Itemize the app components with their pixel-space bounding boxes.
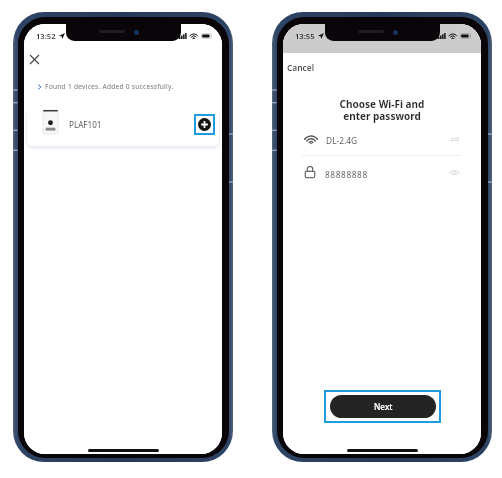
button[interactable]: DL-2.4G: [300, 127, 463, 151]
staticText: Found 1 devices. Added 0 successfully.: [45, 82, 174, 91]
staticText: Choose Wi-Fi and enter password: [283, 97, 481, 123]
staticText: 13:52: [36, 31, 56, 41]
staticText: PLAF101: [69, 119, 102, 130]
staticText: 88888888: [325, 169, 368, 180]
button[interactable]: Add device: [196, 116, 213, 133]
other: Switch network: [450, 136, 460, 143]
staticText: Next: [374, 401, 393, 412]
other: Show password: [449, 169, 460, 176]
staticText: 13:55: [295, 31, 315, 41]
button[interactable]: Next: [330, 395, 436, 418]
button[interactable]: PLAF101: [27, 108, 219, 146]
button[interactable]: Close: [25, 50, 44, 69]
button[interactable]: Cancel: [287, 62, 315, 73]
button[interactable]: 88888888: [300, 158, 463, 184]
staticText: DL-2.4G: [326, 135, 358, 146]
